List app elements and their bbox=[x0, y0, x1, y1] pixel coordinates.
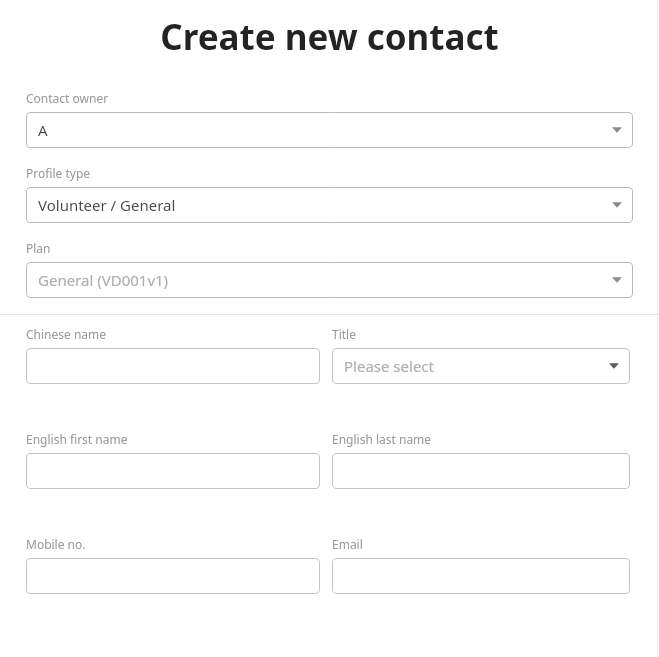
staticText: Profile type bbox=[26, 165, 91, 181]
button[interactable]: Profile type bbox=[26, 187, 633, 223]
button[interactable]: English first name bbox=[26, 453, 320, 489]
button[interactable]: Email bbox=[332, 558, 630, 594]
staticText: Title bbox=[332, 326, 356, 342]
button[interactable]: Chinese name bbox=[26, 348, 320, 384]
staticText: English first name bbox=[26, 431, 128, 447]
staticText: Create new contact bbox=[0, 13, 659, 61]
staticText: Please select bbox=[344, 356, 434, 376]
button[interactable]: Plan bbox=[26, 262, 633, 298]
button[interactable]: Contact owner bbox=[26, 112, 633, 148]
staticText: Chinese name bbox=[26, 326, 107, 342]
staticText: Email bbox=[332, 536, 363, 552]
staticText: Plan bbox=[26, 240, 51, 256]
staticText: Volunteer / General bbox=[38, 195, 176, 215]
staticText: English last name bbox=[332, 431, 432, 447]
staticText: A bbox=[38, 120, 48, 140]
staticText: General (VD001v1) bbox=[38, 270, 169, 290]
staticText: Contact owner bbox=[26, 90, 109, 106]
button[interactable]: Mobile no. bbox=[26, 558, 320, 594]
button[interactable]: English last name bbox=[332, 453, 630, 489]
staticText: Mobile no. bbox=[26, 536, 86, 552]
button[interactable]: Title bbox=[332, 348, 630, 384]
